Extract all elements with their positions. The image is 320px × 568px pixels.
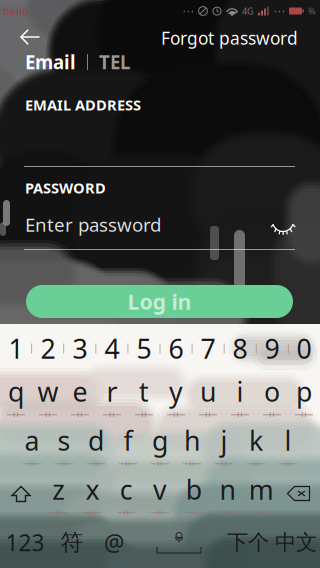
button[interactable]: i xyxy=(224,371,256,420)
staticText: b xyxy=(186,472,202,507)
button[interactable]: 中文 xyxy=(272,518,320,566)
button[interactable]: @ xyxy=(94,518,134,566)
button[interactable]: b xyxy=(177,469,211,518)
staticText: 9 xyxy=(264,331,279,366)
staticText: ⋯ xyxy=(182,4,194,18)
button[interactable]: Log in xyxy=(26,285,293,318)
button[interactable]: 3 xyxy=(64,325,96,371)
staticText: Enter password xyxy=(25,212,161,237)
button[interactable]: TEL xyxy=(99,51,130,73)
staticText: 123 xyxy=(5,527,44,557)
button[interactable]: 符 xyxy=(50,518,94,566)
staticText: 中文 xyxy=(275,529,317,556)
button[interactable]: 1 xyxy=(0,325,32,371)
button[interactable]: Delete xyxy=(278,469,320,518)
staticText: g xyxy=(152,423,168,458)
staticText: i xyxy=(236,374,243,409)
button[interactable]: 8 xyxy=(224,325,256,371)
button[interactable]: g xyxy=(144,420,176,469)
staticText: s xyxy=(57,423,70,458)
button[interactable]: Space xyxy=(134,518,224,566)
staticText: l xyxy=(284,423,291,458)
button[interactable]: Email xyxy=(25,51,76,73)
staticText: j xyxy=(220,423,227,458)
button[interactable]: 6 xyxy=(160,325,192,371)
button[interactable]: 5 xyxy=(128,325,160,371)
staticText: Email xyxy=(25,50,76,74)
staticText: n xyxy=(219,472,235,507)
staticText: e xyxy=(72,374,87,409)
button[interactable]: h xyxy=(176,420,208,469)
button[interactable]: 2 xyxy=(32,325,64,371)
staticText: 2 xyxy=(40,331,55,366)
button[interactable]: r xyxy=(96,371,128,420)
staticText: 3 xyxy=(72,331,87,366)
staticText: y xyxy=(169,374,183,409)
staticText: c xyxy=(120,472,133,507)
staticText: m xyxy=(249,472,274,507)
staticText: Log in xyxy=(127,287,191,316)
button[interactable]: a xyxy=(16,420,48,469)
staticText: 下个 xyxy=(227,529,269,556)
staticText: r xyxy=(106,374,117,409)
staticText: z xyxy=(52,472,65,507)
staticText: u xyxy=(200,374,216,409)
staticText: v xyxy=(153,472,167,507)
button[interactable]: c xyxy=(109,469,143,518)
button[interactable]: x xyxy=(76,469,109,518)
button[interactable]: Back xyxy=(12,25,48,49)
staticText: @ xyxy=(104,527,124,557)
staticText: 符 xyxy=(60,529,83,556)
button[interactable]: u xyxy=(192,371,224,420)
button[interactable]: m xyxy=(244,469,278,518)
staticText: hello xyxy=(3,4,28,18)
button[interactable]: t xyxy=(128,371,160,420)
staticText: 8 xyxy=(232,331,247,366)
staticText: q xyxy=(8,374,24,409)
button[interactable]: l xyxy=(272,420,304,469)
button[interactable]: 123 xyxy=(0,518,50,566)
button[interactable]: y xyxy=(160,371,192,420)
button[interactable]: o xyxy=(256,371,288,420)
staticText: PASSWORD xyxy=(25,178,106,197)
staticText: % xyxy=(308,5,316,17)
button[interactable]: 4 xyxy=(96,325,128,371)
button[interactable]: Show password xyxy=(264,214,302,240)
button[interactable]: v xyxy=(143,469,177,518)
button[interactable]: 下个 xyxy=(224,518,272,566)
button[interactable]: n xyxy=(211,469,244,518)
button[interactable]: Forgot password xyxy=(158,28,298,48)
button[interactable]: 0 xyxy=(288,325,320,371)
button[interactable]: d xyxy=(80,420,112,469)
staticText: TEL xyxy=(99,50,130,74)
staticText: t xyxy=(139,374,149,409)
staticText: d xyxy=(88,423,104,458)
button[interactable]: 9 xyxy=(256,325,288,371)
staticText: f xyxy=(123,423,132,458)
staticText: Forgot password xyxy=(161,26,298,49)
staticText: p xyxy=(296,374,312,409)
staticText: 6 xyxy=(168,331,183,366)
button[interactable]: f xyxy=(112,420,144,469)
staticText: 0 xyxy=(296,331,311,366)
staticText: x xyxy=(86,472,100,507)
button[interactable]: q xyxy=(0,371,32,420)
button[interactable]: Shift xyxy=(0,469,42,518)
button[interactable]: e xyxy=(64,371,96,420)
button[interactable]: k xyxy=(240,420,272,469)
staticText: o xyxy=(264,374,280,409)
button[interactable]: 7 xyxy=(192,325,224,371)
button[interactable]: z xyxy=(42,469,76,518)
button[interactable]: s xyxy=(48,420,80,469)
staticText: h xyxy=(184,423,200,458)
staticText: EMAIL ADDRESS xyxy=(25,95,141,114)
button[interactable]: w xyxy=(32,371,64,420)
staticText: 1 xyxy=(8,331,23,366)
staticText: 4G xyxy=(242,5,254,17)
button[interactable]: j xyxy=(208,420,240,469)
button[interactable]: p xyxy=(288,371,320,420)
staticText: k xyxy=(249,423,263,458)
staticText: ⋯ xyxy=(273,4,285,18)
staticText: a xyxy=(24,423,39,458)
staticText: 7 xyxy=(200,331,215,366)
